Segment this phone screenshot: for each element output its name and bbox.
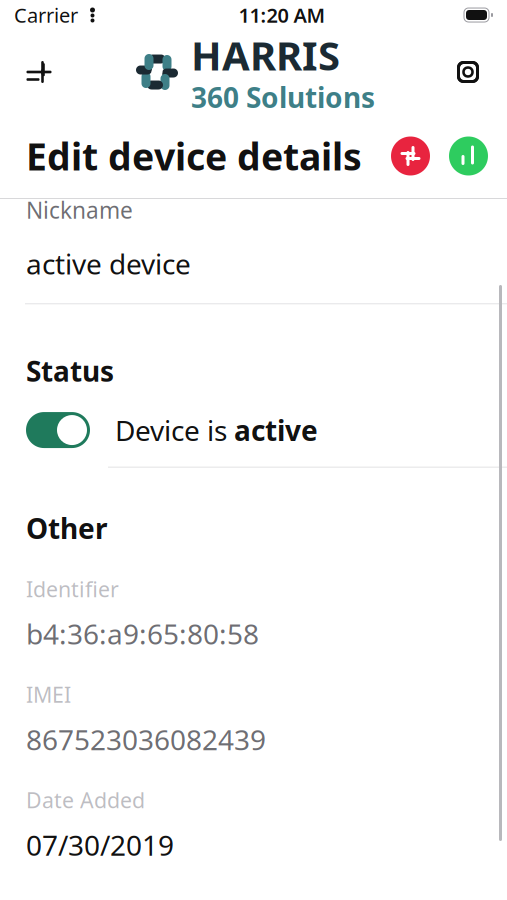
staticText: active device [26,245,191,282]
button[interactable]: Back [12,45,66,99]
button[interactable]: Device is active [26,412,90,448]
staticText: Identifier [26,575,119,603]
staticText: 360 Solutions [191,78,375,116]
staticText: Other [26,510,108,547]
staticText: 07/30/2019 [26,826,174,863]
staticText: Device is [115,411,234,449]
staticText: HARRIS [191,28,340,81]
button[interactable]: Cancel [391,136,430,175]
button[interactable]: Save [430,136,488,175]
staticText: b4:36:a9:65:80:58 [26,615,259,652]
button[interactable]: Settings [441,45,495,99]
staticText: Date Added [26,786,145,814]
staticText: active [234,411,318,449]
staticText: 867523036082439 [26,721,266,758]
staticText: Status [26,352,114,389]
staticText: Nickname [26,195,133,225]
staticText: IMEI [26,680,71,709]
staticText: 11:20 AM [238,2,325,28]
staticText: Carrier [14,2,78,28]
staticText: Edit device details [26,131,362,181]
